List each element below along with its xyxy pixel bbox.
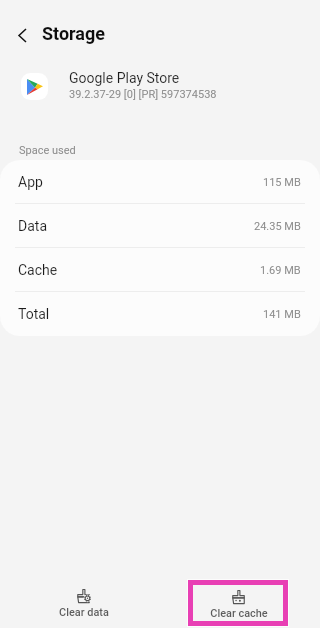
button[interactable]: Total xyxy=(0,292,320,336)
staticText: App xyxy=(18,174,43,190)
staticText: Total xyxy=(18,306,50,322)
button[interactable]: Data xyxy=(0,204,320,248)
staticText: Space used xyxy=(19,144,76,157)
button[interactable]: Clear data xyxy=(34,580,133,625)
staticText: Data xyxy=(18,218,47,234)
staticText: Clear data xyxy=(59,606,109,619)
staticText: 24.35 MB xyxy=(254,220,301,233)
button[interactable]: Back xyxy=(5,18,39,52)
button[interactable]: App xyxy=(0,160,320,204)
button[interactable]: Cache xyxy=(0,248,320,292)
staticText: 39.2.37-29 [0] [PR] 597374538 xyxy=(69,88,217,101)
staticText: Google Play Store xyxy=(69,70,180,86)
staticText: Clear cache xyxy=(210,607,268,620)
staticText: 141 MB xyxy=(263,308,301,321)
staticText: Storage xyxy=(42,23,106,44)
staticText: Cache xyxy=(18,262,58,278)
button[interactable]: Clear cache xyxy=(188,580,288,626)
staticText: 115 MB xyxy=(263,176,301,189)
staticText: 1.69 MB xyxy=(260,264,301,277)
